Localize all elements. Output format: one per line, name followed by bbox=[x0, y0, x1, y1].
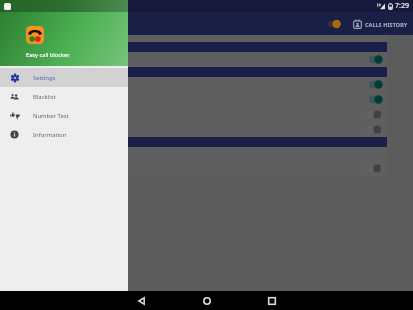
staticText: Settings bbox=[33, 74, 56, 82]
staticText: Information bbox=[33, 131, 67, 139]
staticText: Easy call blocker bbox=[26, 51, 70, 59]
staticText: CALLS HISTORY bbox=[365, 21, 408, 28]
staticText: 7:29 bbox=[395, 1, 409, 11]
button[interactable]: Blacklist bbox=[0, 87, 128, 106]
button[interactable] bbox=[0, 161, 387, 176]
button[interactable] bbox=[0, 107, 387, 122]
button[interactable] bbox=[0, 122, 387, 137]
button[interactable] bbox=[0, 52, 387, 67]
button[interactable]: Home bbox=[174, 291, 239, 310]
button[interactable]: Information bbox=[0, 125, 128, 144]
button[interactable]: Settings bbox=[0, 68, 128, 87]
button[interactable]: Recent apps bbox=[239, 291, 304, 310]
button[interactable]: Blocking enabled bbox=[328, 17, 341, 31]
button[interactable] bbox=[0, 92, 387, 107]
button[interactable]: Number Test bbox=[0, 106, 128, 125]
staticText: Blacklist bbox=[33, 93, 56, 101]
button[interactable]: Back bbox=[109, 291, 174, 310]
button[interactable]: CALLS HISTORY bbox=[352, 16, 409, 32]
staticText: Number Test bbox=[33, 112, 69, 120]
button[interactable] bbox=[0, 77, 387, 92]
